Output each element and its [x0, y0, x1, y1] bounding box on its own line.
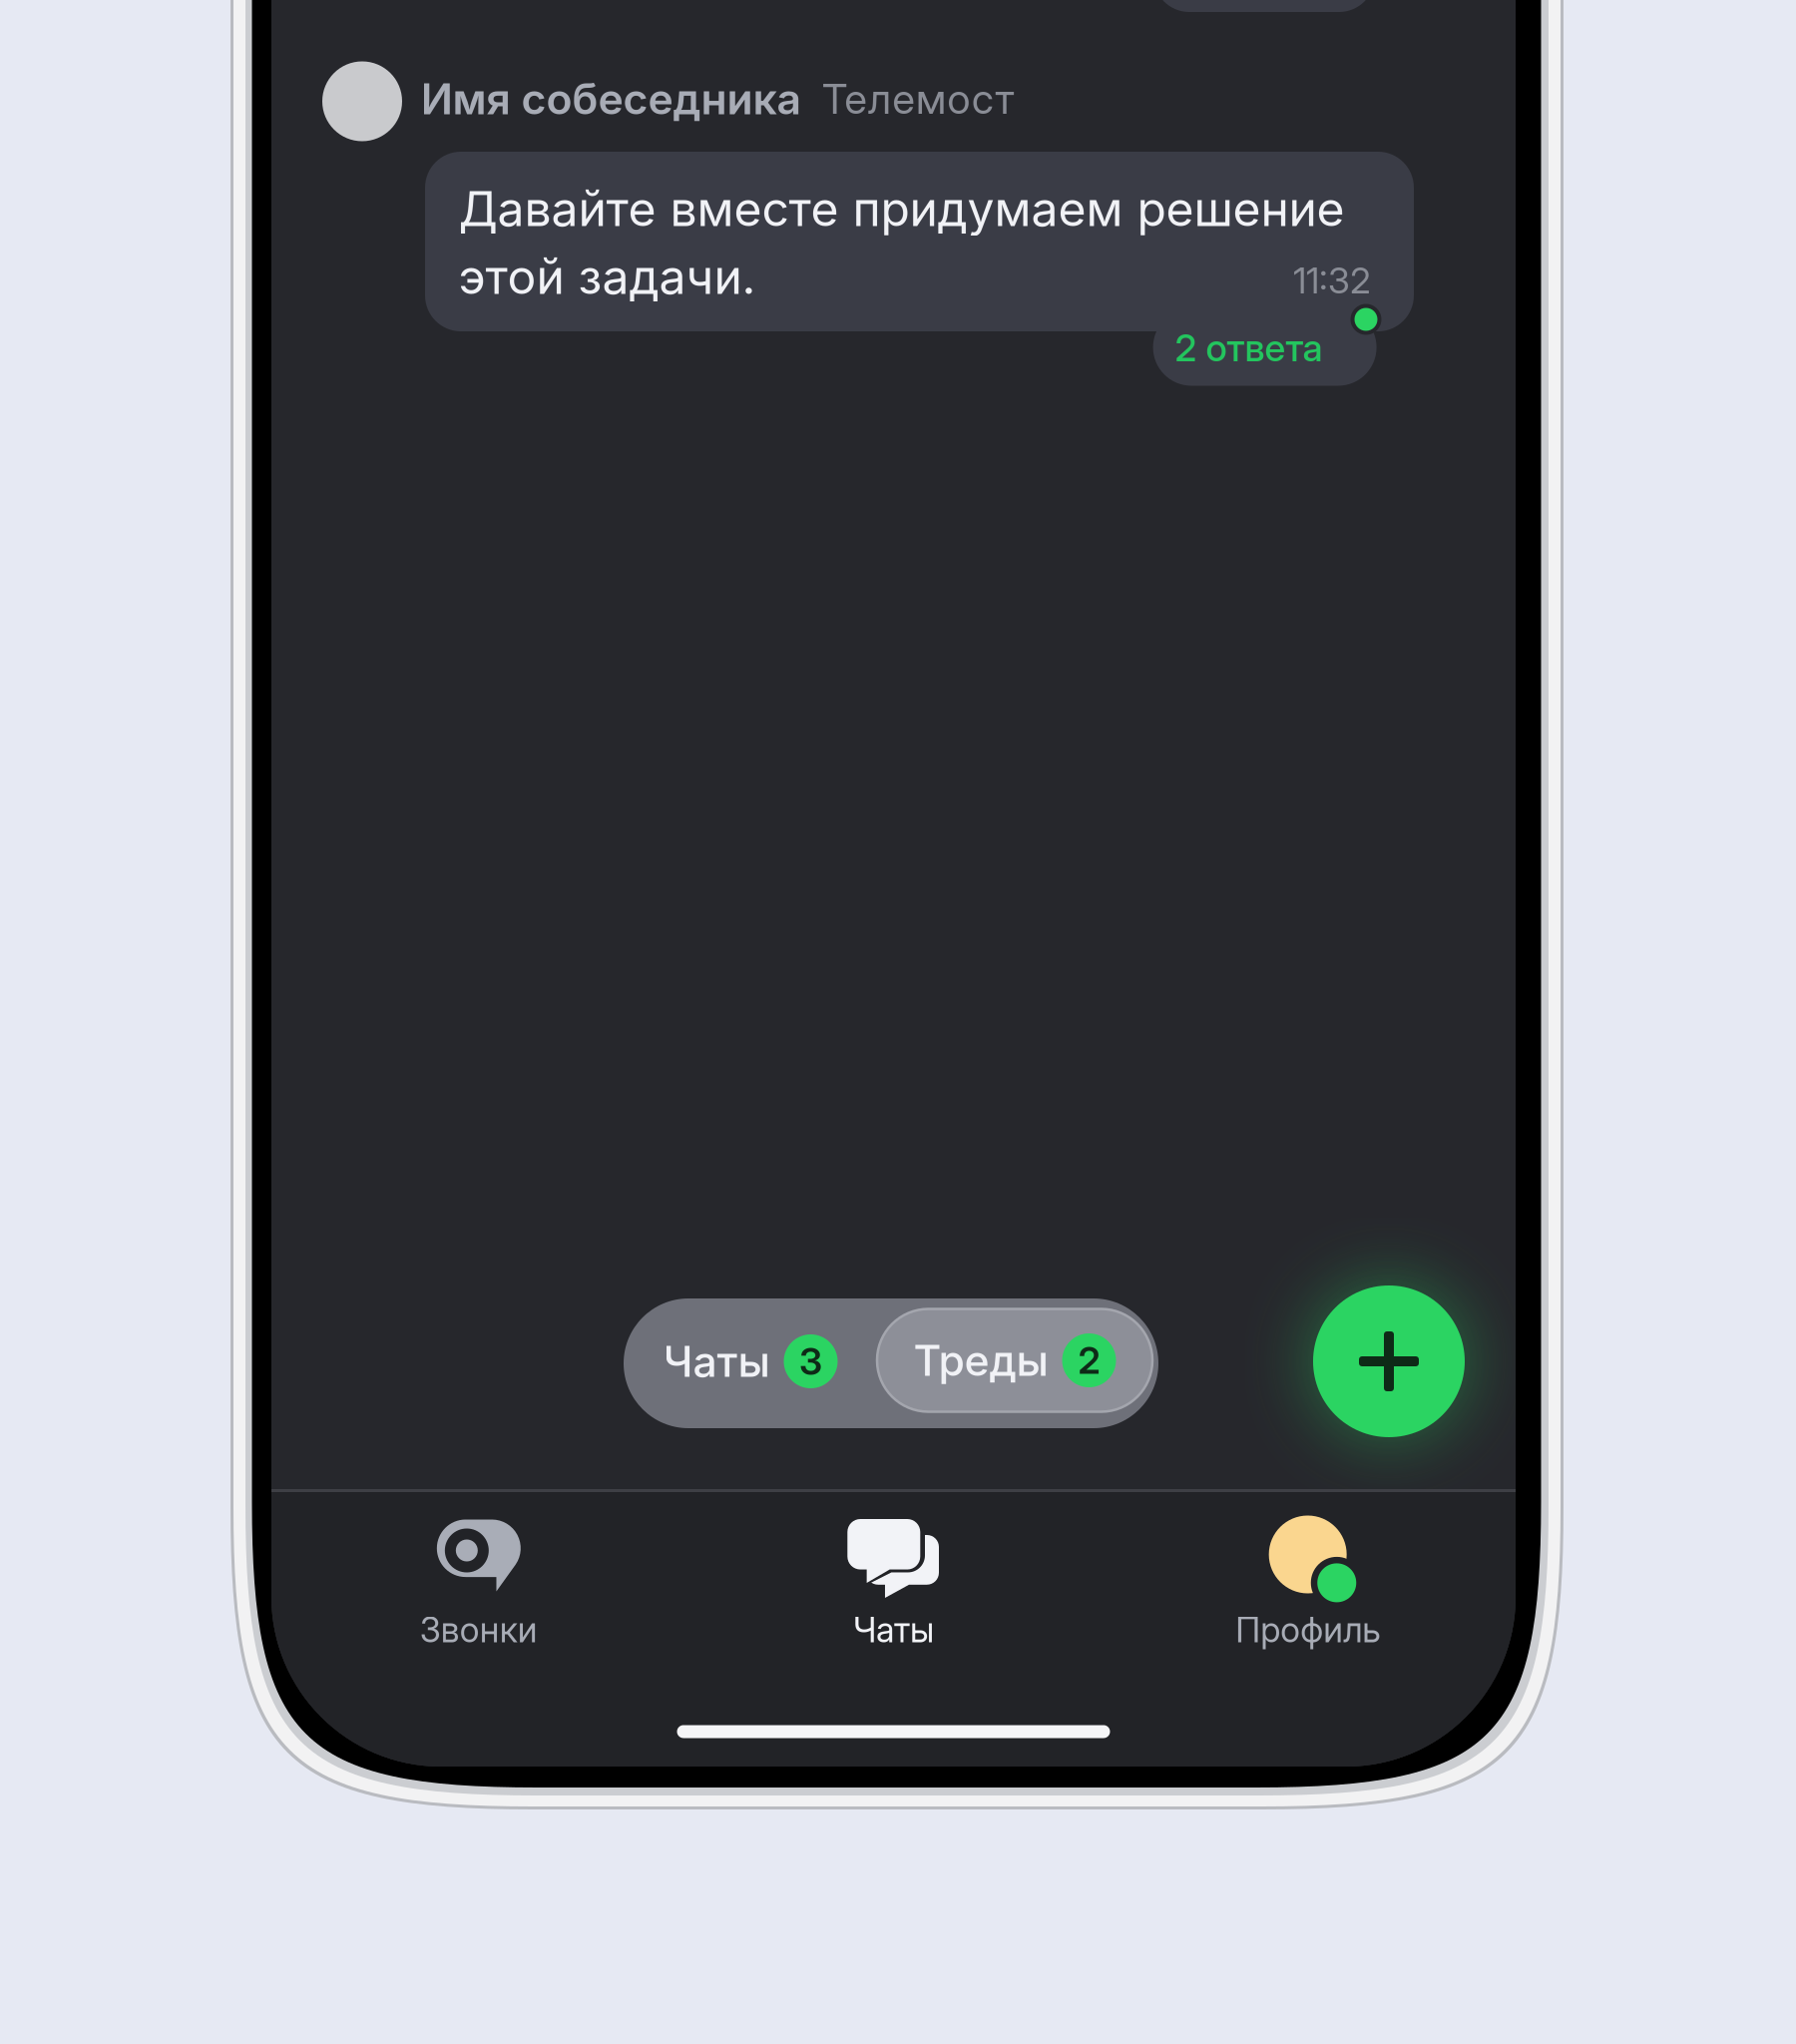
button[interactable]: Профиль — [1101, 1489, 1516, 1767]
staticText: Звонки — [420, 1609, 538, 1651]
staticText: Треды — [913, 1335, 1048, 1386]
staticText: Давайте вместе придумаем решение — [458, 180, 1345, 238]
staticText: Телемост — [822, 74, 1014, 124]
button[interactable]: 2 ответа — [1153, 309, 1377, 386]
button[interactable]: Звонки — [271, 1489, 686, 1767]
staticText: 3 — [799, 1339, 822, 1384]
staticText: 2 — [1078, 1338, 1100, 1383]
staticText: Профиль — [1235, 1609, 1381, 1651]
staticText: Чаты — [663, 1336, 770, 1387]
button[interactable]: Новый чат — [1313, 1285, 1465, 1437]
staticText: 11:32 — [1293, 259, 1371, 302]
button[interactable]: Чаты — [623, 1296, 878, 1426]
staticText: 2 ответа — [1175, 325, 1323, 370]
staticText: Имя собеседника — [421, 73, 802, 125]
button[interactable]: Чаты — [686, 1489, 1101, 1767]
staticText: этой задачи. — [458, 248, 756, 306]
staticText: Чаты — [853, 1609, 934, 1651]
button[interactable]: Треды — [877, 1295, 1152, 1425]
